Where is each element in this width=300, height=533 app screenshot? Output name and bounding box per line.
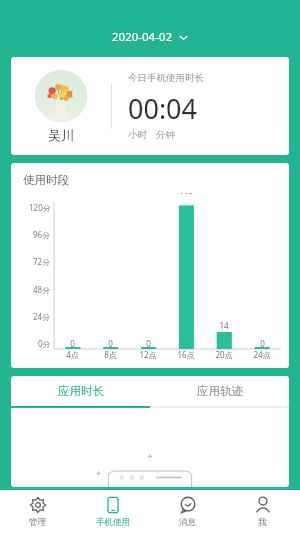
staticText: 24点 (253, 349, 271, 360)
staticText: 12点 (139, 349, 157, 360)
staticText: 48分 (33, 284, 51, 295)
staticText: 应用轨迹 (197, 384, 243, 398)
button[interactable]: 手机使用 (75, 490, 150, 533)
button[interactable]: 应用轨迹 (150, 376, 289, 406)
staticText: 分钟 (156, 129, 175, 141)
staticText: 4点 (66, 349, 79, 360)
staticText: 小时 (128, 129, 147, 141)
staticText: 应用时长 (58, 384, 104, 398)
staticText: 0分 (38, 338, 51, 349)
staticText: 管理 (29, 517, 46, 528)
staticText: 0 (108, 338, 113, 349)
button[interactable]: 我 (225, 490, 300, 533)
staticText: 00:04 (128, 90, 198, 127)
staticText: 0 (146, 338, 151, 349)
staticText: 120分 (29, 202, 51, 213)
staticText: 14 (219, 320, 229, 331)
button[interactable]: 2020-04-02 (106, 27, 194, 47)
staticText: 2020-04-02 (112, 29, 173, 45)
staticText: 0 (70, 338, 75, 349)
staticText: 今日手机使用时长 (128, 72, 204, 84)
staticText: 8点 (104, 349, 117, 360)
staticText: 我 (258, 517, 267, 528)
button[interactable]: 应用时长 (11, 376, 150, 406)
staticText: 0 (260, 338, 265, 349)
button[interactable]: 管理 (0, 490, 75, 533)
staticText: 96分 (33, 229, 51, 240)
staticText: 118 (179, 191, 193, 194)
staticText: 使用时段 (23, 173, 69, 187)
staticText: 24分 (33, 311, 51, 322)
staticText: 20点 (215, 349, 233, 360)
staticText: 消息 (179, 517, 196, 528)
staticText: 16点 (177, 349, 195, 360)
staticText: 吴川 (48, 127, 74, 143)
staticText: 72分 (33, 256, 51, 267)
staticText: 手机使用 (96, 517, 130, 528)
button[interactable]: 吴川 (11, 57, 289, 155)
button[interactable]: 消息 (150, 490, 225, 533)
